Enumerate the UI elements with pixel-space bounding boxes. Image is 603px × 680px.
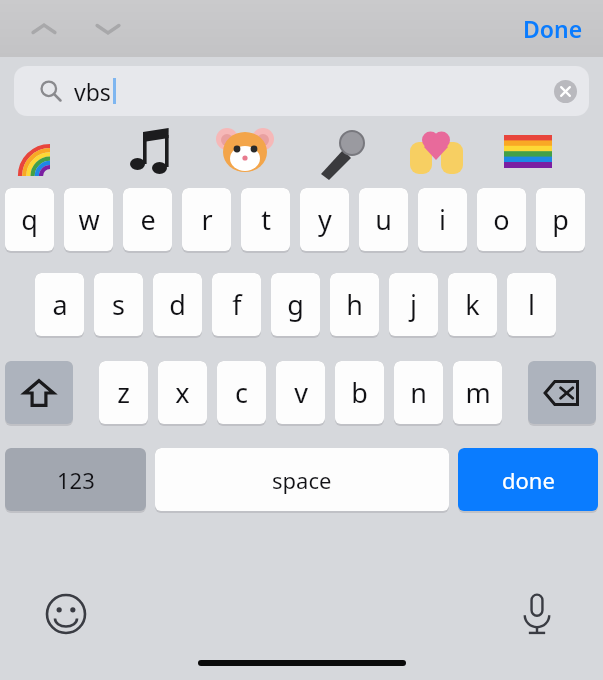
- staticText: s: [112, 286, 125, 323]
- button[interactable]: r: [182, 188, 231, 253]
- staticText: o: [493, 201, 510, 238]
- staticText: m: [465, 374, 491, 411]
- button[interactable]: x: [158, 361, 207, 426]
- staticText: z: [117, 374, 130, 411]
- staticText: j: [410, 286, 417, 323]
- button[interactable]: Next field: [84, 0, 132, 57]
- staticText: x: [175, 374, 190, 411]
- staticText: w: [78, 201, 100, 238]
- button[interactable]: b: [335, 361, 384, 426]
- button[interactable]: space: [155, 448, 449, 513]
- button[interactable]: done: [458, 448, 598, 513]
- button[interactable]: Done: [513, 5, 593, 52]
- button[interactable]: z: [99, 361, 148, 426]
- staticText: h: [346, 286, 363, 323]
- button[interactable]: v: [276, 361, 325, 426]
- button[interactable]: Dictation: [511, 588, 563, 640]
- staticText: f: [232, 286, 242, 323]
- button[interactable]: Emoji keyboard: [40, 588, 92, 640]
- button[interactable]: d: [153, 273, 202, 338]
- staticText: t: [261, 201, 271, 238]
- button[interactable]: m: [453, 361, 502, 426]
- staticText: g: [287, 286, 304, 323]
- button[interactable]: t: [241, 188, 290, 253]
- staticText: v: [294, 374, 308, 411]
- button[interactable]: Emoji suggestion: [502, 124, 603, 181]
- staticText: y: [318, 201, 332, 238]
- staticText: 123: [57, 465, 95, 495]
- button[interactable]: j: [389, 273, 438, 338]
- staticText: r: [201, 201, 213, 238]
- button[interactable]: h: [330, 273, 379, 338]
- staticText: u: [375, 201, 392, 238]
- staticText: vbs: [74, 76, 111, 107]
- button[interactable]: y: [300, 188, 349, 253]
- button[interactable]: 123: [5, 448, 146, 513]
- staticText: Done: [523, 13, 583, 44]
- button[interactable]: k: [448, 273, 497, 338]
- button[interactable]: e: [123, 188, 172, 253]
- button[interactable]: Emoji suggestion: [100, 124, 200, 181]
- button[interactable]: vbs: [14, 66, 589, 116]
- button[interactable]: l: [507, 273, 556, 338]
- staticText: d: [169, 286, 186, 323]
- staticText: done: [502, 465, 555, 495]
- button[interactable]: Emoji suggestion: [200, 124, 300, 181]
- button[interactable]: Emoji suggestion: [0, 124, 100, 181]
- staticText: n: [410, 374, 427, 411]
- button[interactable]: p: [536, 188, 585, 253]
- staticText: l: [528, 286, 535, 323]
- staticText: k: [465, 286, 480, 323]
- button[interactable]: u: [359, 188, 408, 253]
- staticText: c: [235, 374, 248, 411]
- staticText: a: [52, 286, 68, 323]
- staticText: e: [140, 201, 156, 238]
- button[interactable]: a: [35, 273, 84, 338]
- button[interactable]: Clear text: [547, 73, 583, 109]
- button[interactable]: i: [418, 188, 467, 253]
- button[interactable]: g: [271, 273, 320, 338]
- button[interactable]: o: [477, 188, 526, 253]
- button[interactable]: s: [94, 273, 143, 338]
- staticText: q: [21, 201, 38, 238]
- staticText: i: [439, 201, 446, 238]
- button[interactable]: Emoji suggestion: [300, 124, 401, 181]
- button[interactable]: c: [217, 361, 266, 426]
- button[interactable]: n: [394, 361, 443, 426]
- button[interactable]: Shift: [5, 361, 73, 426]
- button[interactable]: Previous field: [20, 0, 68, 57]
- staticText: b: [351, 374, 368, 411]
- staticText: p: [552, 201, 569, 238]
- button[interactable]: Backspace: [528, 361, 596, 426]
- button[interactable]: q: [5, 188, 54, 253]
- button[interactable]: w: [64, 188, 113, 253]
- button[interactable]: f: [212, 273, 261, 338]
- button[interactable]: Emoji suggestion: [401, 124, 502, 181]
- staticText: space: [272, 465, 332, 495]
